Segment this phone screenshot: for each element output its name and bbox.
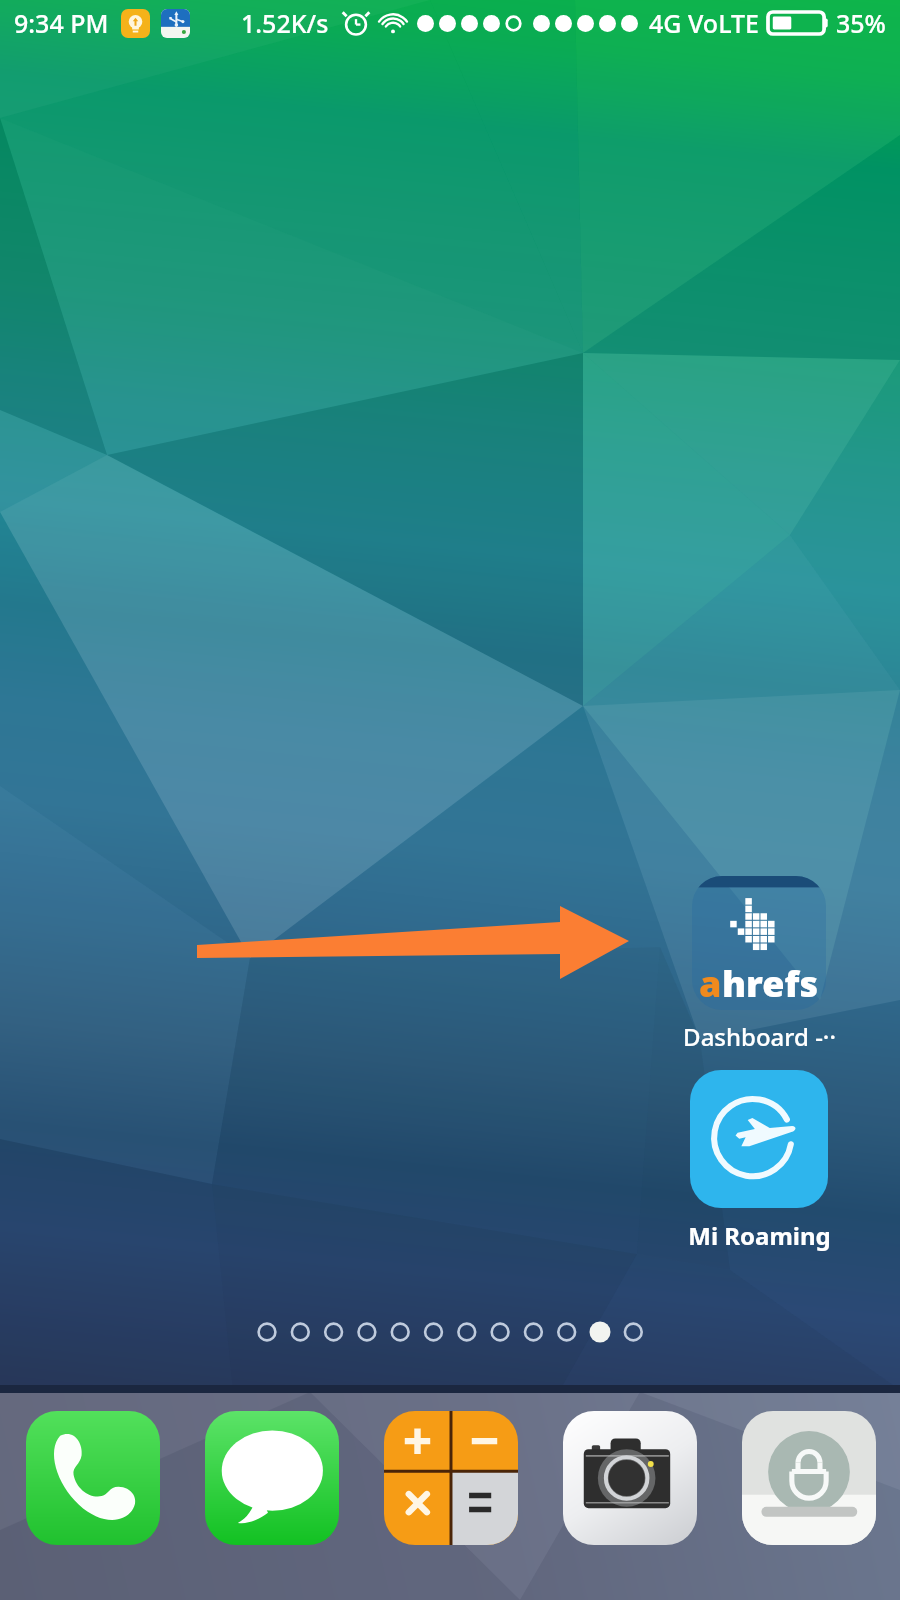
button[interactable]: Messages xyxy=(205,1411,339,1545)
staticText: a xyxy=(699,959,722,1008)
staticText: Dashboard -·· xyxy=(683,1020,836,1053)
staticText: 4G VoLTE xyxy=(649,6,759,40)
other: Pointer arrow xyxy=(0,0,900,1600)
button[interactable]: Mi Roaming xyxy=(664,1070,854,1252)
staticText: 9:34 PM xyxy=(14,6,109,40)
staticText: 1.52K/s xyxy=(241,6,329,40)
button[interactable]: a xyxy=(664,876,854,1053)
button[interactable]: Calculator xyxy=(384,1411,518,1545)
staticText: Mi Roaming xyxy=(688,1219,831,1252)
button[interactable]: Camera xyxy=(563,1411,697,1545)
staticText: 35% xyxy=(836,6,886,40)
staticText: hrefs xyxy=(722,959,819,1008)
button[interactable]: Phone xyxy=(26,1411,160,1545)
button[interactable]: Security xyxy=(742,1411,876,1545)
